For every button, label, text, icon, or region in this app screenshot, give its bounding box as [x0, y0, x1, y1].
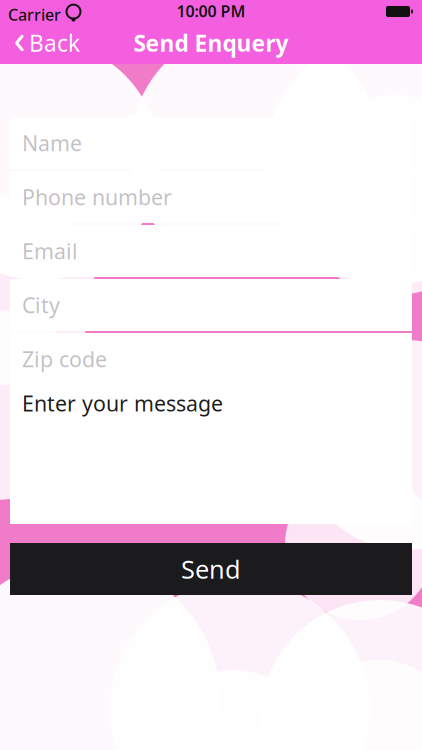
staticText: Send — [181, 552, 241, 586]
staticText: Email — [22, 237, 78, 265]
button[interactable]: Name — [10, 117, 412, 169]
button[interactable]: Zip code — [10, 333, 412, 385]
staticText: Enter your message — [22, 389, 223, 417]
staticText: Phone number — [22, 183, 172, 211]
staticText: 10:00 PM — [176, 0, 245, 22]
staticText: Send Enquery — [133, 28, 288, 58]
button[interactable]: Email — [10, 225, 412, 277]
button[interactable]: City — [10, 279, 412, 331]
staticText: City — [22, 291, 60, 319]
staticText: Name — [22, 129, 82, 157]
button[interactable]: Back — [4, 22, 90, 64]
button[interactable]: Enter your message — [10, 377, 412, 524]
button[interactable]: Send — [10, 543, 412, 595]
button[interactable]: Phone number — [10, 171, 412, 223]
staticText: Zip code — [22, 345, 107, 373]
staticText: Back — [29, 28, 80, 58]
staticText: Carrier — [8, 4, 61, 25]
